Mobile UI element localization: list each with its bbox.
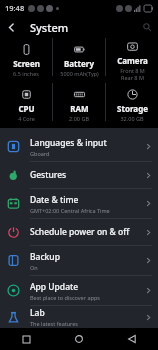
staticText: Front 8 M — [120, 67, 145, 74]
staticText: Camera — [117, 55, 148, 66]
staticText: 5000 mAh(Typ) — [60, 70, 99, 77]
staticText: Screen — [13, 58, 40, 69]
button[interactable]: Camera — [106, 38, 158, 83]
button[interactable]: Backup — [0, 246, 158, 275]
button[interactable]: Storage — [106, 83, 158, 128]
button[interactable]: App Update — [0, 276, 158, 305]
button[interactable]: Home — [52, 328, 105, 350]
staticText: Rear 8 M — [121, 74, 144, 81]
staticText: Gboard — [30, 150, 50, 157]
staticText: RAM — [70, 103, 89, 114]
button[interactable]: RAM — [53, 83, 105, 128]
button[interactable]: CPU — [0, 83, 52, 128]
staticText: Languages & input — [30, 137, 107, 149]
staticText: Best place to discover apps — [30, 294, 100, 301]
button[interactable]: Languages & input — [0, 132, 158, 161]
staticText: Date & time — [30, 194, 79, 206]
button[interactable]: Screen — [0, 38, 52, 83]
button[interactable]: Back — [105, 328, 158, 350]
staticText: GMT+02:00 Central Africa Time — [30, 207, 110, 214]
staticText: App Update — [30, 281, 79, 293]
staticText: Gestures — [30, 169, 67, 181]
button[interactable]: Search — [136, 16, 158, 38]
button[interactable]: Battery — [53, 38, 105, 83]
button[interactable]: Gestures — [0, 162, 158, 188]
staticText: 6.5 inches — [13, 70, 39, 77]
staticText: CPU — [18, 103, 35, 114]
button[interactable]: Back — [0, 16, 22, 38]
staticText: On — [30, 264, 38, 271]
staticText: Backup — [30, 251, 60, 263]
button[interactable]: Schedule power on & off — [0, 219, 158, 245]
staticText: Storage — [117, 103, 148, 114]
button[interactable]: Date & time — [0, 189, 158, 218]
staticText: The latest features — [30, 320, 78, 327]
staticText: System — [30, 20, 69, 35]
button[interactable]: Recent apps — [0, 328, 52, 350]
staticText: 32.00 GB — [120, 115, 144, 122]
button[interactable]: Lab — [0, 306, 158, 328]
staticText: Battery — [64, 58, 94, 69]
staticText: 2.00 GB — [69, 115, 89, 122]
staticText: Lab — [30, 307, 45, 319]
staticText: Schedule power on & off — [30, 226, 130, 238]
staticText: 19:48 — [5, 3, 25, 13]
staticText: 4 Core — [18, 115, 35, 122]
